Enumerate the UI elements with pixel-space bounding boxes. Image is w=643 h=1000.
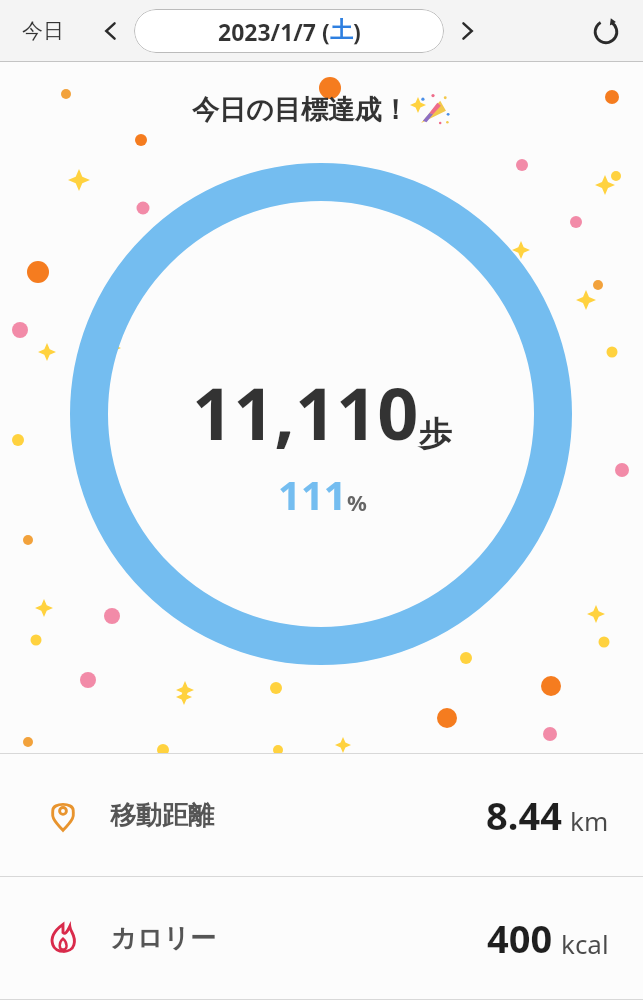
button[interactable]: 2023/1/7 ( [134, 9, 444, 53]
staticText: 8.44 [486, 789, 562, 841]
staticText: ) [353, 16, 361, 47]
staticText: % [347, 487, 367, 517]
staticText: 2023/1/7 ( [218, 16, 330, 47]
button[interactable]: Next day [450, 14, 484, 48]
staticText: 歩 [419, 413, 452, 455]
staticText: 400 [487, 912, 553, 964]
button[interactable]: Refresh [583, 8, 629, 54]
staticText: kcal [561, 926, 609, 961]
staticText: 移動距離 [110, 799, 214, 832]
staticText: 11,110 [192, 363, 419, 461]
staticText: カロリー [110, 922, 216, 955]
staticText: 111 [278, 467, 347, 521]
staticText: 今日 [22, 18, 64, 44]
staticText: 土 [330, 16, 353, 45]
staticText: 今日の目標達成！ [192, 93, 409, 127]
staticText: km [570, 803, 609, 838]
button[interactable]: 移動距離 [0, 754, 643, 876]
button[interactable]: カロリー [0, 877, 643, 999]
button[interactable]: 今日 [22, 18, 64, 44]
button[interactable]: Previous day [94, 14, 128, 48]
